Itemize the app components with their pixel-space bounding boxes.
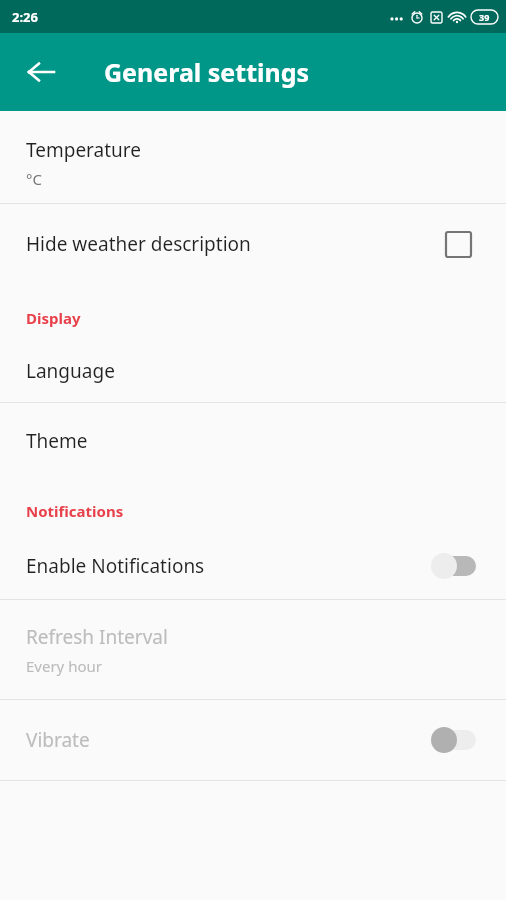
staticText: Enable Notifications [26,553,205,579]
staticText: °C [26,169,42,189]
button[interactable]: Hide weather description checkbox [436,222,480,266]
staticText: Vibrate [26,727,90,753]
staticText: Display [26,308,81,328]
button[interactable]: Theme [0,403,506,479]
staticText: Refresh Interval [26,624,168,650]
button[interactable]: Back [14,45,68,99]
staticText: Theme [26,428,88,454]
button[interactable]: Temperature [0,123,506,203]
button[interactable]: Toggle [426,720,480,760]
button[interactable]: Toggle [426,546,480,586]
staticText: Hide weather description [26,231,251,257]
staticText: Every hour [26,656,102,676]
staticText: Temperature [26,137,142,163]
staticText: Notifications [26,501,124,521]
staticText: General settings [104,55,310,89]
button[interactable]: Hide weather description [0,204,506,284]
button[interactable]: Vibrate [0,700,506,780]
staticText: 2:26 [12,8,38,26]
button[interactable]: Refresh Interval [0,600,506,699]
staticText: Language [26,358,115,384]
button[interactable]: Language [0,340,506,402]
button[interactable]: Enable Notifications [0,533,506,599]
staticText: 39 [479,11,490,23]
